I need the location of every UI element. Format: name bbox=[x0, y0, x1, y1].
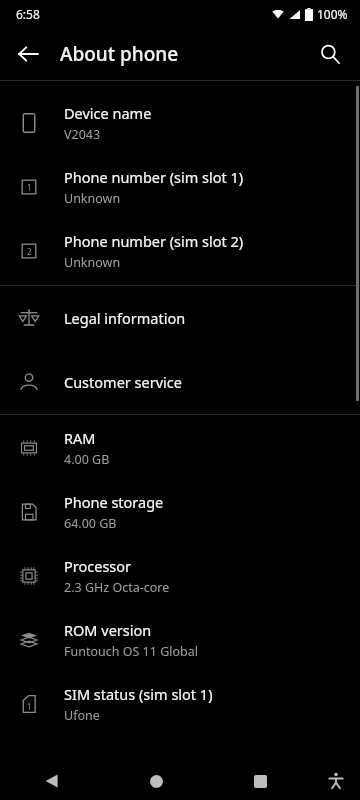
staticText: Device name bbox=[64, 103, 152, 123]
staticText: 4.00 GB bbox=[64, 451, 110, 468]
staticText: Processor bbox=[64, 556, 132, 576]
staticText: 1 bbox=[27, 182, 32, 193]
staticText: 100% bbox=[317, 6, 348, 22]
staticText: 64.00 GB bbox=[64, 515, 117, 532]
staticText: Customer service bbox=[64, 372, 182, 392]
staticText: Legal information bbox=[64, 308, 186, 328]
staticText: 2 bbox=[27, 246, 32, 257]
button[interactable]: Back bbox=[0, 762, 104, 800]
staticText: 2.3 GHz Octa-core bbox=[64, 579, 170, 596]
button[interactable]: Legal information bbox=[0, 286, 360, 350]
button[interactable]: Device name bbox=[0, 91, 360, 155]
button[interactable]: ROM version bbox=[0, 608, 360, 672]
button[interactable]: Search bbox=[310, 34, 350, 74]
staticText: About phone bbox=[60, 41, 179, 67]
button[interactable]: RAM bbox=[0, 416, 360, 480]
staticText: SIM status (sim slot 1) bbox=[64, 684, 213, 704]
button[interactable]: Home bbox=[104, 762, 208, 800]
staticText: Phone number (sim slot 1) bbox=[64, 167, 244, 187]
button[interactable]: Accessibility bbox=[312, 762, 360, 800]
staticText: V2043 bbox=[64, 126, 101, 143]
staticText: RAM bbox=[64, 428, 96, 448]
button[interactable]: 2 bbox=[0, 219, 360, 283]
staticText: Phone number (sim slot 2) bbox=[64, 231, 244, 251]
staticText: Unknown bbox=[64, 190, 121, 207]
staticText: Unknown bbox=[64, 254, 121, 271]
button[interactable]: Customer service bbox=[0, 350, 360, 414]
staticText: Ufone bbox=[64, 707, 100, 724]
staticText: Phone storage bbox=[64, 492, 164, 512]
button[interactable]: Phone storage bbox=[0, 480, 360, 544]
button[interactable]: 1 bbox=[0, 155, 360, 219]
button[interactable]: Processor bbox=[0, 544, 360, 608]
staticText: 6:58 bbox=[16, 6, 40, 22]
button[interactable]: Recents bbox=[208, 762, 312, 800]
button[interactable]: 1 bbox=[0, 672, 360, 736]
button[interactable]: Back bbox=[8, 34, 48, 74]
staticText: ROM version bbox=[64, 620, 152, 640]
staticText: Funtouch OS 11 Global bbox=[64, 643, 198, 660]
staticText: 1 bbox=[27, 701, 32, 712]
